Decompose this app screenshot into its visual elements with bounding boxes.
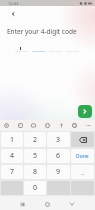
button[interactable] — [49, 42, 62, 52]
button[interactable]: 1 — [1, 132, 23, 147]
button[interactable] — [32, 42, 45, 52]
staticText: 1 — [10, 135, 15, 145]
button[interactable]: Keyboard tool 2 — [29, 121, 38, 130]
staticText: 0 — [33, 183, 38, 193]
button[interactable]: Keyboard tool 1 — [16, 121, 25, 130]
staticText: 7 — [10, 167, 15, 177]
staticText: 3 — [56, 135, 61, 145]
button[interactable]: 7 — [1, 165, 23, 179]
button[interactable]: Keyboard tool 3 — [43, 121, 52, 130]
button[interactable]: Recents — [17, 199, 27, 209]
button[interactable] — [15, 42, 28, 52]
staticText: ., — [81, 169, 84, 176]
button[interactable]: Keyboard tool 4 — [57, 121, 66, 130]
button[interactable]: done — [71, 149, 94, 163]
button[interactable]: 9 — [47, 165, 70, 179]
staticText: 12:43 — [8, 1, 19, 6]
button[interactable]: 3 — [47, 132, 70, 147]
button[interactable]: 5 — [24, 149, 46, 163]
button[interactable]: Keyboard tool 5 — [70, 121, 79, 130]
button[interactable]: 8 — [24, 165, 46, 179]
button[interactable]: back — [71, 132, 94, 147]
staticText: 2 — [33, 135, 38, 145]
button[interactable]: sym — [71, 165, 94, 179]
button[interactable] — [66, 42, 79, 52]
staticText: 9 — [56, 167, 61, 177]
staticText: Enter your 4-digit code — [7, 27, 77, 36]
button[interactable]: Home — [42, 199, 52, 209]
staticText: Done — [76, 153, 89, 160]
button[interactable]: 4 — [1, 149, 23, 163]
button[interactable]: 6 — [47, 149, 70, 163]
button[interactable]: Back — [8, 9, 18, 19]
button[interactable]: 2 — [24, 132, 46, 147]
staticText: 6 — [56, 151, 61, 161]
button[interactable]: 0 — [24, 181, 46, 195]
button[interactable]: Keyboard tool 6 — [84, 121, 93, 130]
staticText: 5 — [33, 151, 38, 161]
button[interactable]: Keyboard tool 0 — [2, 121, 11, 130]
button[interactable]: Continue — [78, 105, 92, 118]
staticText: 8 — [33, 167, 38, 177]
staticText: 4 — [10, 151, 15, 161]
button[interactable]: Back — [67, 199, 77, 209]
